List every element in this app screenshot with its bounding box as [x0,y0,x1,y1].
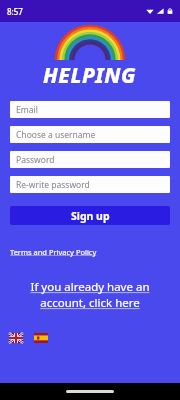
staticText: HELPING [43,61,137,90]
button[interactable]: Re-write password [10,176,170,193]
button[interactable]: Choose a username [10,126,170,143]
button[interactable]: Terms and Privacy Policy [10,247,97,257]
button[interactable]: Email [10,101,170,118]
staticText: Re-write password [16,179,90,191]
button[interactable]: If you already have an account, click he… [0,279,180,311]
button[interactable]: Sign up [10,206,170,225]
staticText: Email [16,104,38,116]
button[interactable]: Password [10,151,170,168]
staticText: 8:57 [7,6,23,17]
staticText: Sign up [71,209,110,223]
button[interactable]: English [9,333,23,343]
staticText: Choose a username [16,129,96,141]
button[interactable]: Spanish [34,333,48,343]
staticText: If you already have an account, click he… [14,279,166,311]
staticText: Password [16,154,55,166]
